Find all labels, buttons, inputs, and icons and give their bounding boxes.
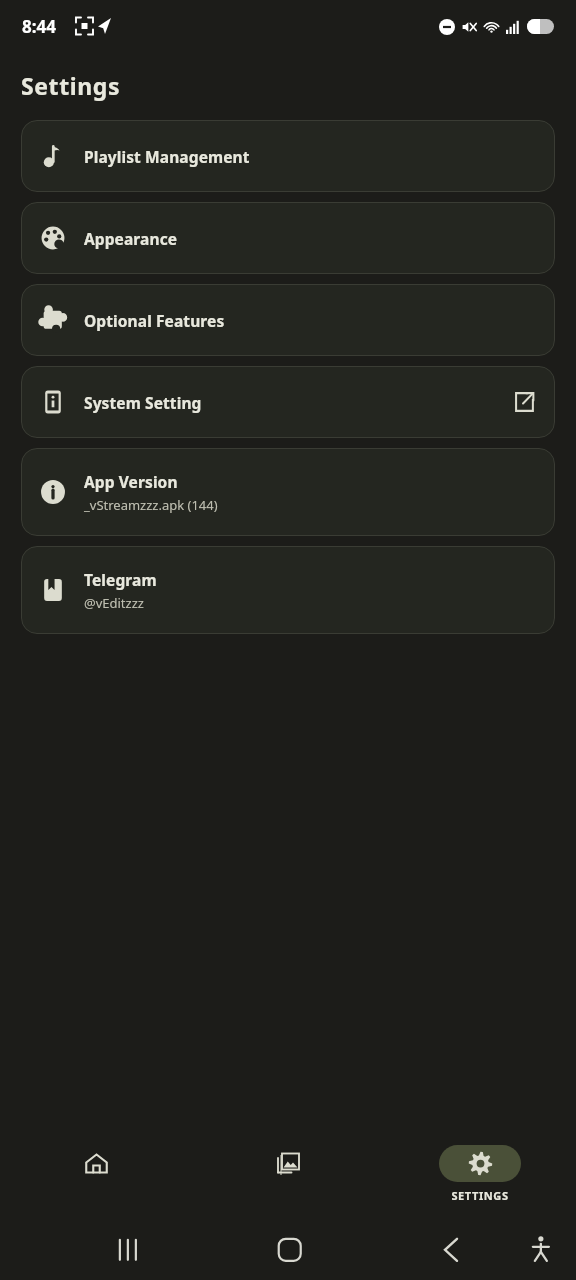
button[interactable]: App Version [21, 448, 555, 536]
staticText: @vEditzzz [84, 594, 144, 612]
staticText: Appearance [84, 228, 178, 249]
button[interactable]: System Setting [21, 366, 555, 438]
staticText: App Version [84, 471, 178, 492]
button[interactable]: Optional Features [21, 284, 555, 356]
staticText: System Setting [84, 392, 202, 413]
button[interactable]: Appearance [21, 202, 555, 274]
staticText: _vStreamzzz.apk (144) [84, 496, 218, 514]
button[interactable]: SETTINGS [384, 1127, 576, 1203]
staticText: SETTINGS [451, 1188, 509, 1203]
button[interactable]: Telegram [21, 546, 555, 634]
button[interactable]: Playlist Management [21, 120, 555, 192]
staticText: Settings [21, 70, 121, 101]
button[interactable]: Home [0, 1127, 192, 1182]
staticText: Telegram [84, 569, 157, 590]
staticText: Optional Features [84, 310, 225, 331]
button[interactable]: Gallery [192, 1127, 384, 1182]
staticText: Playlist Management [84, 146, 250, 167]
staticText: 8:44 [22, 15, 56, 38]
